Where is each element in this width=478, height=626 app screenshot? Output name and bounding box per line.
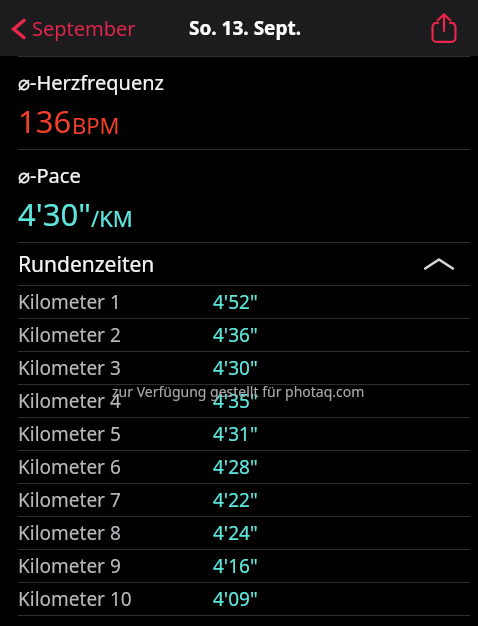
staticText: So. 13. Sept. <box>189 15 302 41</box>
staticText: 136 <box>18 100 72 142</box>
staticText: Kilometer 8 <box>18 520 121 546</box>
button[interactable]: ⌀-Herzfrequenz <box>0 57 478 149</box>
staticText: /KM <box>91 203 133 233</box>
button[interactable]: Kilometer 8 <box>0 517 478 549</box>
button[interactable]: Kilometer 9 <box>0 550 478 582</box>
button[interactable]: ⌀-Pace <box>0 150 478 242</box>
staticText: 4'24" <box>213 520 258 546</box>
staticText: 4'31" <box>213 421 258 447</box>
staticText: September <box>32 15 136 42</box>
staticText: 4'22" <box>213 487 258 513</box>
staticText: 4'36" <box>213 322 258 348</box>
staticText: Rundenzeiten <box>18 250 155 279</box>
staticText: Kilometer 10 <box>18 586 132 612</box>
button[interactable]: Kilometer 6 <box>0 451 478 483</box>
staticText: Kilometer 2 <box>18 322 121 348</box>
button[interactable]: Kilometer 3 <box>0 352 478 384</box>
staticText: Kilometer 6 <box>18 454 121 480</box>
staticText: 4'35" <box>213 388 258 414</box>
button[interactable]: Teilen <box>424 8 464 48</box>
staticText: 4'52" <box>213 289 258 315</box>
staticText: 4'30" <box>213 355 258 381</box>
button[interactable]: Kilometer 10 <box>0 583 478 615</box>
staticText: Kilometer 7 <box>18 487 121 513</box>
staticText: Kilometer 1 <box>18 289 121 315</box>
staticText: ⌀-Herzfrequenz <box>18 69 164 96</box>
staticText: ⌀-Pace <box>18 162 81 189</box>
staticText: Kilometer 3 <box>18 355 121 381</box>
button[interactable]: Rundenzeiten <box>0 243 478 285</box>
button[interactable]: Kilometer 2 <box>0 319 478 351</box>
button[interactable]: Kilometer 7 <box>0 484 478 516</box>
staticText: 4'09" <box>213 586 258 612</box>
staticText: Kilometer 9 <box>18 553 121 579</box>
button[interactable]: Kilometer 1 <box>0 286 478 318</box>
other: Einklappen <box>424 256 454 272</box>
staticText: 4'16" <box>213 553 258 579</box>
staticText: 4'30" <box>18 193 91 235</box>
button[interactable]: Kilometer 4 <box>0 385 478 417</box>
staticText: 4'28" <box>213 454 258 480</box>
button[interactable]: September <box>6 11 144 46</box>
staticText: BPM <box>72 110 120 140</box>
staticText: Kilometer 5 <box>18 421 121 447</box>
button[interactable]: Kilometer 5 <box>0 418 478 450</box>
staticText: Kilometer 4 <box>18 388 121 414</box>
staticText: zur Verfügung gestellt für photaq.com <box>112 382 478 401</box>
